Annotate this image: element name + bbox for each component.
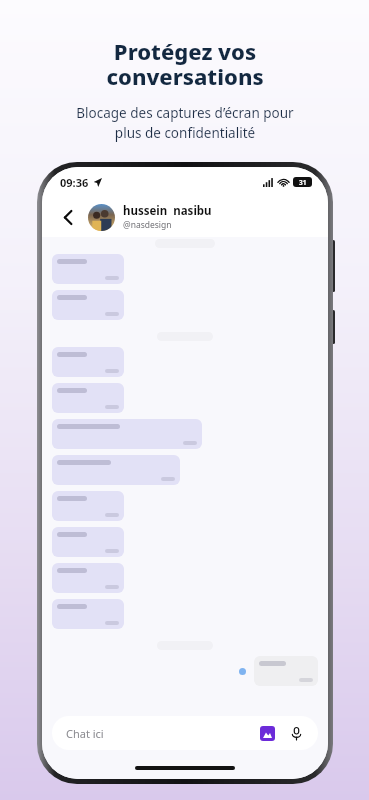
- staticText: Protégez vos conversations: [106, 36, 264, 92]
- button[interactable]: [52, 383, 124, 413]
- staticText: @nasdesign: [123, 219, 172, 231]
- button[interactable]: Back: [56, 205, 80, 229]
- button[interactable]: [52, 290, 124, 320]
- button[interactable]: Voice message: [288, 725, 304, 741]
- button[interactable]: [254, 656, 318, 686]
- button[interactable]: [52, 419, 202, 449]
- button[interactable]: [52, 527, 124, 557]
- button[interactable]: Chat ici: [52, 716, 318, 750]
- button[interactable]: [52, 491, 124, 521]
- button[interactable]: [52, 455, 180, 485]
- button[interactable]: [52, 599, 124, 629]
- staticText: hussein nasibu: [123, 203, 212, 219]
- button[interactable]: [52, 254, 124, 284]
- staticText: 09:36: [60, 175, 89, 190]
- button[interactable]: [52, 347, 124, 377]
- staticText: Blocage des captures d’écran pour plus d…: [76, 104, 294, 142]
- button[interactable]: Send image: [260, 726, 275, 741]
- button[interactable]: hussein nasibu: [123, 203, 212, 231]
- staticText: Chat ici: [66, 726, 104, 741]
- button[interactable]: [52, 563, 124, 593]
- staticText: 31: [299, 178, 307, 187]
